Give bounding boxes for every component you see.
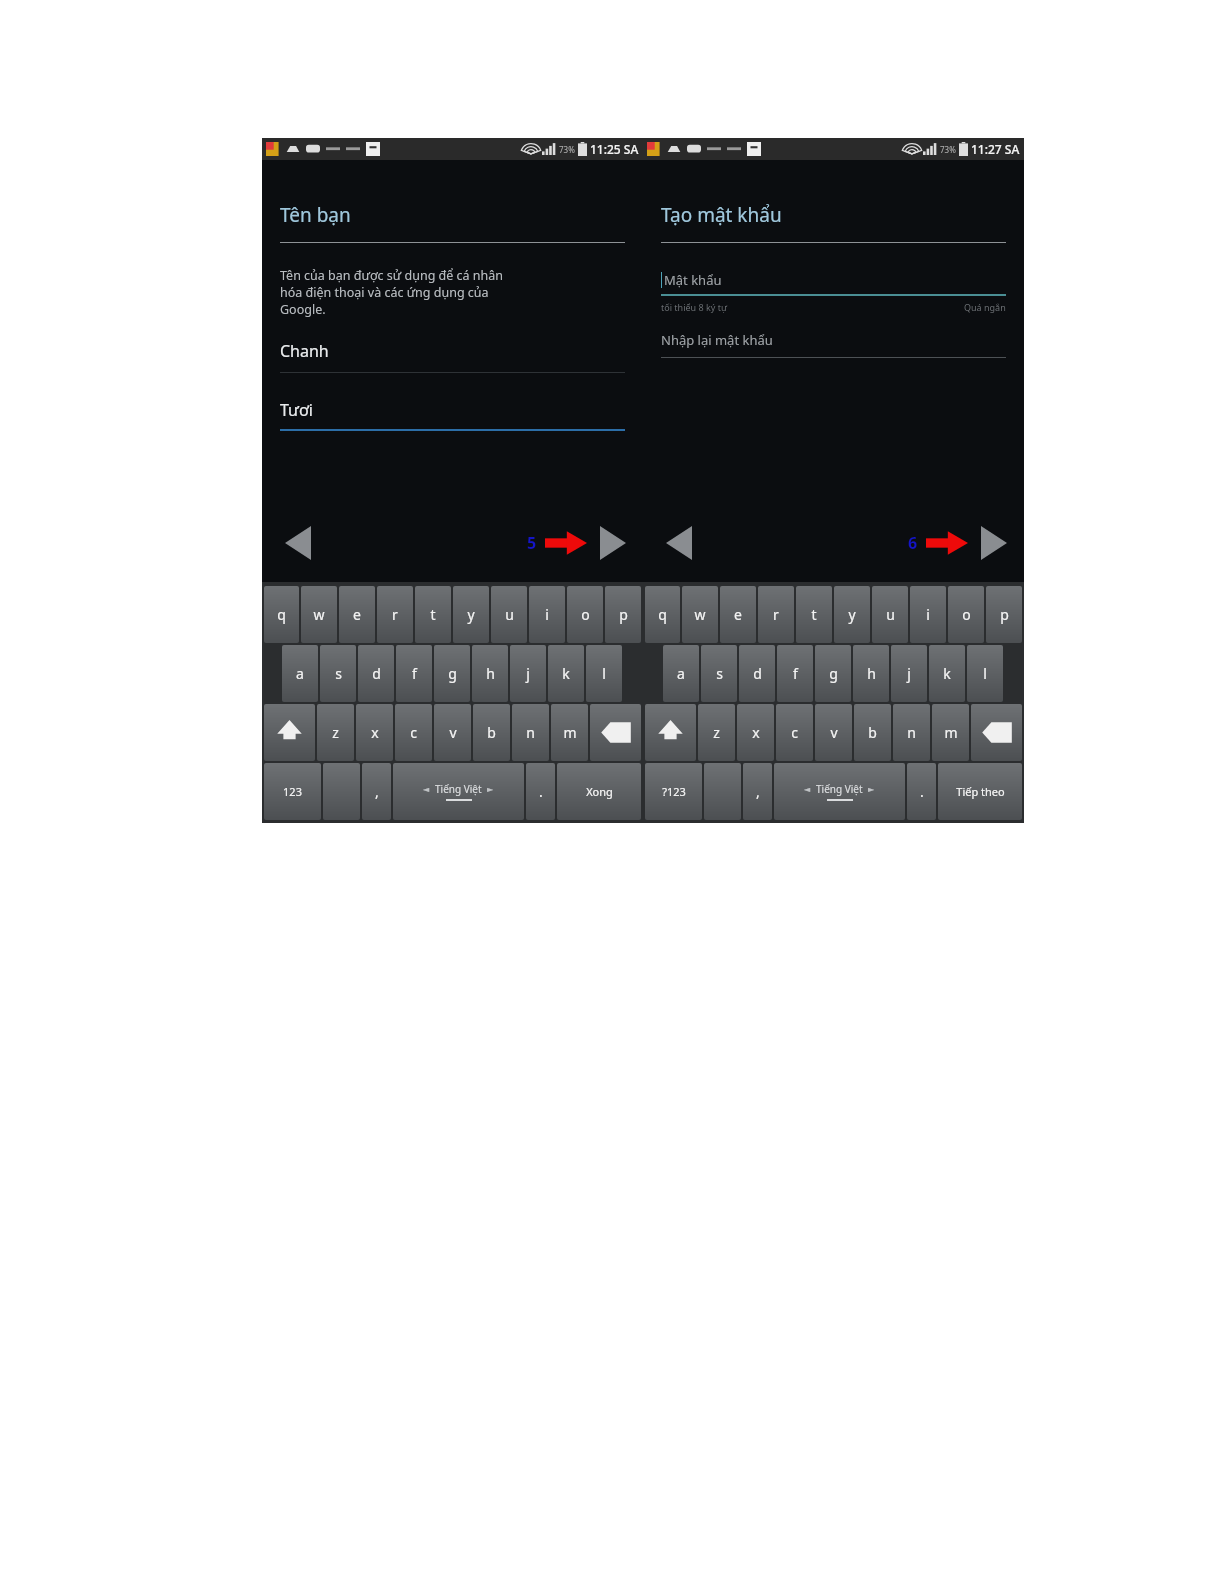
- button[interactable]: Nhập lại mật khẩu: [661, 331, 1006, 358]
- button[interactable]: Tươi: [280, 399, 625, 431]
- button[interactable]: Shift: [264, 704, 315, 761]
- staticText: k: [943, 664, 951, 683]
- button[interactable]: c: [776, 704, 813, 761]
- staticText: p: [1000, 605, 1009, 624]
- button[interactable]: .: [907, 763, 936, 820]
- staticText: Tiếng Việt: [435, 782, 482, 796]
- button[interactable]: Xong: [557, 763, 641, 820]
- button[interactable]: s: [320, 645, 356, 702]
- button[interactable]: h: [472, 645, 508, 702]
- button[interactable]: Quay lại: [657, 521, 701, 565]
- staticText: n: [907, 723, 916, 742]
- staticText: ►: [487, 785, 494, 794]
- button[interactable]: g: [815, 645, 851, 702]
- button[interactable]: w: [682, 586, 718, 643]
- button[interactable]: x: [356, 704, 393, 761]
- staticText: d: [753, 664, 762, 683]
- button[interactable]: y: [453, 586, 489, 643]
- button[interactable]: w: [301, 586, 337, 643]
- button[interactable]: Tiếp theo: [972, 521, 1016, 565]
- button[interactable]: f: [396, 645, 432, 702]
- button[interactable]: p: [605, 586, 641, 643]
- button[interactable]: g: [434, 645, 470, 702]
- button[interactable]: Mật khẩu: [661, 271, 1006, 296]
- button[interactable]: t: [796, 586, 832, 643]
- button[interactable]: j: [510, 645, 546, 702]
- staticText: z: [332, 723, 339, 742]
- button[interactable]: Cài đặt: [323, 763, 360, 820]
- button[interactable]: .: [526, 763, 555, 820]
- staticText: 6: [908, 532, 918, 554]
- button[interactable]: k: [548, 645, 584, 702]
- button[interactable]: d: [739, 645, 775, 702]
- button[interactable]: ?123: [645, 763, 702, 820]
- button[interactable]: v: [815, 704, 852, 761]
- button[interactable]: h: [853, 645, 889, 702]
- staticText: 123: [283, 784, 302, 799]
- button[interactable]: c: [395, 704, 432, 761]
- button[interactable]: n: [512, 704, 549, 761]
- button[interactable]: b: [854, 704, 891, 761]
- button[interactable]: k: [929, 645, 965, 702]
- button[interactable]: Tiếp theo: [591, 521, 635, 565]
- button[interactable]: ◄: [393, 763, 524, 820]
- button[interactable]: v: [434, 704, 471, 761]
- button[interactable]: t: [415, 586, 451, 643]
- button[interactable]: Quay lại: [276, 521, 320, 565]
- staticText: Tên bạn: [280, 202, 351, 228]
- button[interactable]: l: [586, 645, 622, 702]
- button[interactable]: n: [893, 704, 930, 761]
- button[interactable]: Cài đặt: [704, 763, 741, 820]
- button[interactable]: i: [529, 586, 565, 643]
- button[interactable]: Chanh: [280, 340, 625, 373]
- button[interactable]: i: [910, 586, 946, 643]
- button[interactable]: e: [720, 586, 756, 643]
- button[interactable]: o: [567, 586, 603, 643]
- staticText: u: [886, 605, 895, 624]
- button[interactable]: e: [339, 586, 375, 643]
- button[interactable]: u: [491, 586, 527, 643]
- button[interactable]: ◄: [774, 763, 905, 820]
- button[interactable]: Shift: [645, 704, 696, 761]
- button[interactable]: s: [701, 645, 737, 702]
- staticText: y: [467, 605, 475, 624]
- button[interactable]: b: [473, 704, 510, 761]
- button[interactable]: y: [834, 586, 870, 643]
- staticText: q: [658, 605, 667, 624]
- staticText: ►: [868, 785, 875, 794]
- button[interactable]: z: [317, 704, 354, 761]
- staticText: j: [907, 664, 911, 683]
- button[interactable]: l: [967, 645, 1003, 702]
- button[interactable]: a: [663, 645, 699, 702]
- staticText: h: [486, 664, 495, 683]
- button[interactable]: m: [932, 704, 969, 761]
- staticText: q: [277, 605, 286, 624]
- staticText: a: [677, 664, 685, 683]
- button[interactable]: j: [891, 645, 927, 702]
- button[interactable]: Xóa: [590, 704, 641, 761]
- button[interactable]: a: [282, 645, 318, 702]
- staticText: s: [716, 664, 723, 683]
- button[interactable]: 123: [264, 763, 321, 820]
- button[interactable]: r: [758, 586, 794, 643]
- staticText: tối thiểu 8 ký tự: [661, 301, 728, 313]
- staticText: z: [713, 723, 720, 742]
- button[interactable]: q: [645, 586, 680, 643]
- button[interactable]: m: [551, 704, 588, 761]
- button[interactable]: r: [377, 586, 413, 643]
- staticText: l: [602, 664, 606, 683]
- button[interactable]: Xóa: [971, 704, 1022, 761]
- button[interactable]: x: [737, 704, 774, 761]
- button[interactable]: p: [986, 586, 1022, 643]
- button[interactable]: ,: [743, 763, 772, 820]
- staticText: j: [526, 664, 530, 683]
- button[interactable]: ,: [362, 763, 391, 820]
- staticText: x: [752, 723, 760, 742]
- button[interactable]: f: [777, 645, 813, 702]
- button[interactable]: Tiếp theo: [938, 763, 1022, 820]
- button[interactable]: q: [264, 586, 299, 643]
- button[interactable]: z: [698, 704, 735, 761]
- button[interactable]: o: [948, 586, 984, 643]
- button[interactable]: d: [358, 645, 394, 702]
- button[interactable]: u: [872, 586, 908, 643]
